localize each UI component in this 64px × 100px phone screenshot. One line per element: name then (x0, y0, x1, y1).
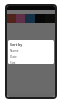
staticText: Date (10, 55, 17, 59)
staticText: Size (10, 61, 16, 64)
staticText: Name (10, 49, 19, 53)
staticText: Sort by (10, 42, 23, 47)
